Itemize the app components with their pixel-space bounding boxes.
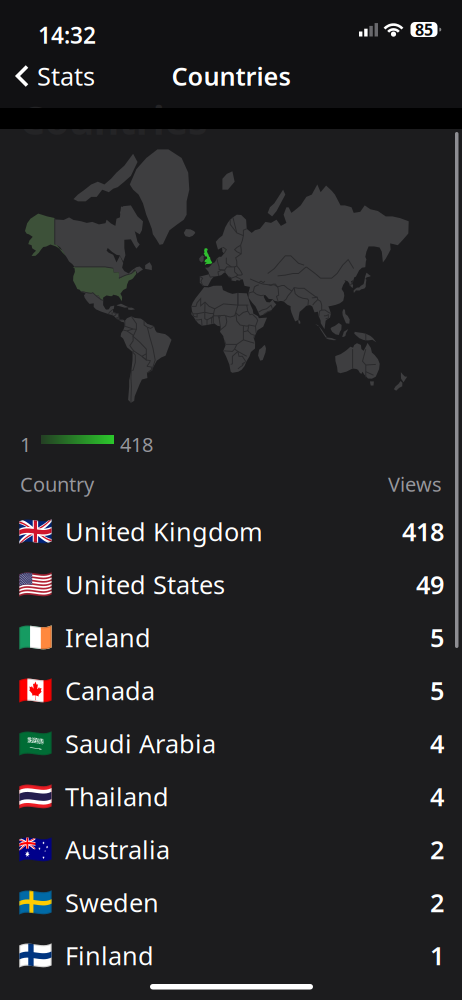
staticText: 4	[430, 780, 444, 813]
staticText: 🇬🇧	[18, 515, 53, 547]
staticText: 🇸🇦	[18, 727, 53, 759]
staticText: United Kingdom	[65, 515, 263, 548]
staticText: Country	[20, 471, 94, 497]
staticText: 5	[430, 674, 444, 707]
staticText: 1	[20, 431, 31, 458]
staticText: Saudi Arabia	[65, 727, 216, 760]
button[interactable]: 🇮🇪	[0, 611, 462, 664]
staticText: 🇫🇮	[18, 939, 53, 971]
staticText: Australia	[65, 833, 170, 866]
staticText: Thailand	[65, 780, 169, 813]
staticText: Countries	[20, 94, 207, 145]
button[interactable]: 🇦🇺	[0, 823, 462, 876]
staticText: Canada	[65, 674, 155, 707]
staticText: 🇹🇭	[18, 780, 53, 812]
button[interactable]: 🇬🇧	[0, 505, 462, 558]
staticText: 5	[430, 621, 444, 654]
staticText: 418	[402, 515, 444, 548]
button[interactable]: 🇫🇮	[0, 929, 462, 982]
staticText: 🇺🇸	[18, 568, 53, 600]
staticText: 85	[415, 19, 433, 40]
button[interactable]: 🇸🇪	[0, 876, 462, 929]
staticText: Views	[388, 471, 442, 497]
button[interactable]: 🇨🇦	[0, 664, 462, 717]
staticText: 418	[120, 431, 153, 458]
staticText: Sweden	[65, 886, 159, 919]
staticText: 🇦🇺	[18, 833, 53, 865]
staticText: Finland	[65, 939, 154, 972]
staticText: 🇨🇦	[18, 674, 53, 706]
staticText: United States	[65, 568, 225, 601]
button[interactable]: 🇺🇸	[0, 558, 462, 611]
staticText: Stats	[37, 59, 95, 93]
button[interactable]: Stats	[6, 54, 103, 98]
staticText: 1	[430, 939, 444, 972]
staticText: Countries	[171, 59, 290, 93]
staticText: 49	[416, 568, 444, 601]
staticText: Ireland	[65, 621, 151, 654]
button[interactable]: 🇹🇭	[0, 770, 462, 823]
staticText: 4	[430, 727, 444, 760]
staticText: 🇮🇪	[18, 621, 53, 653]
staticText: 2	[430, 833, 444, 866]
staticText: 2	[430, 886, 444, 919]
button[interactable]: 🇸🇦	[0, 717, 462, 770]
staticText: 14:32	[38, 20, 96, 50]
staticText: 🇸🇪	[18, 886, 53, 918]
